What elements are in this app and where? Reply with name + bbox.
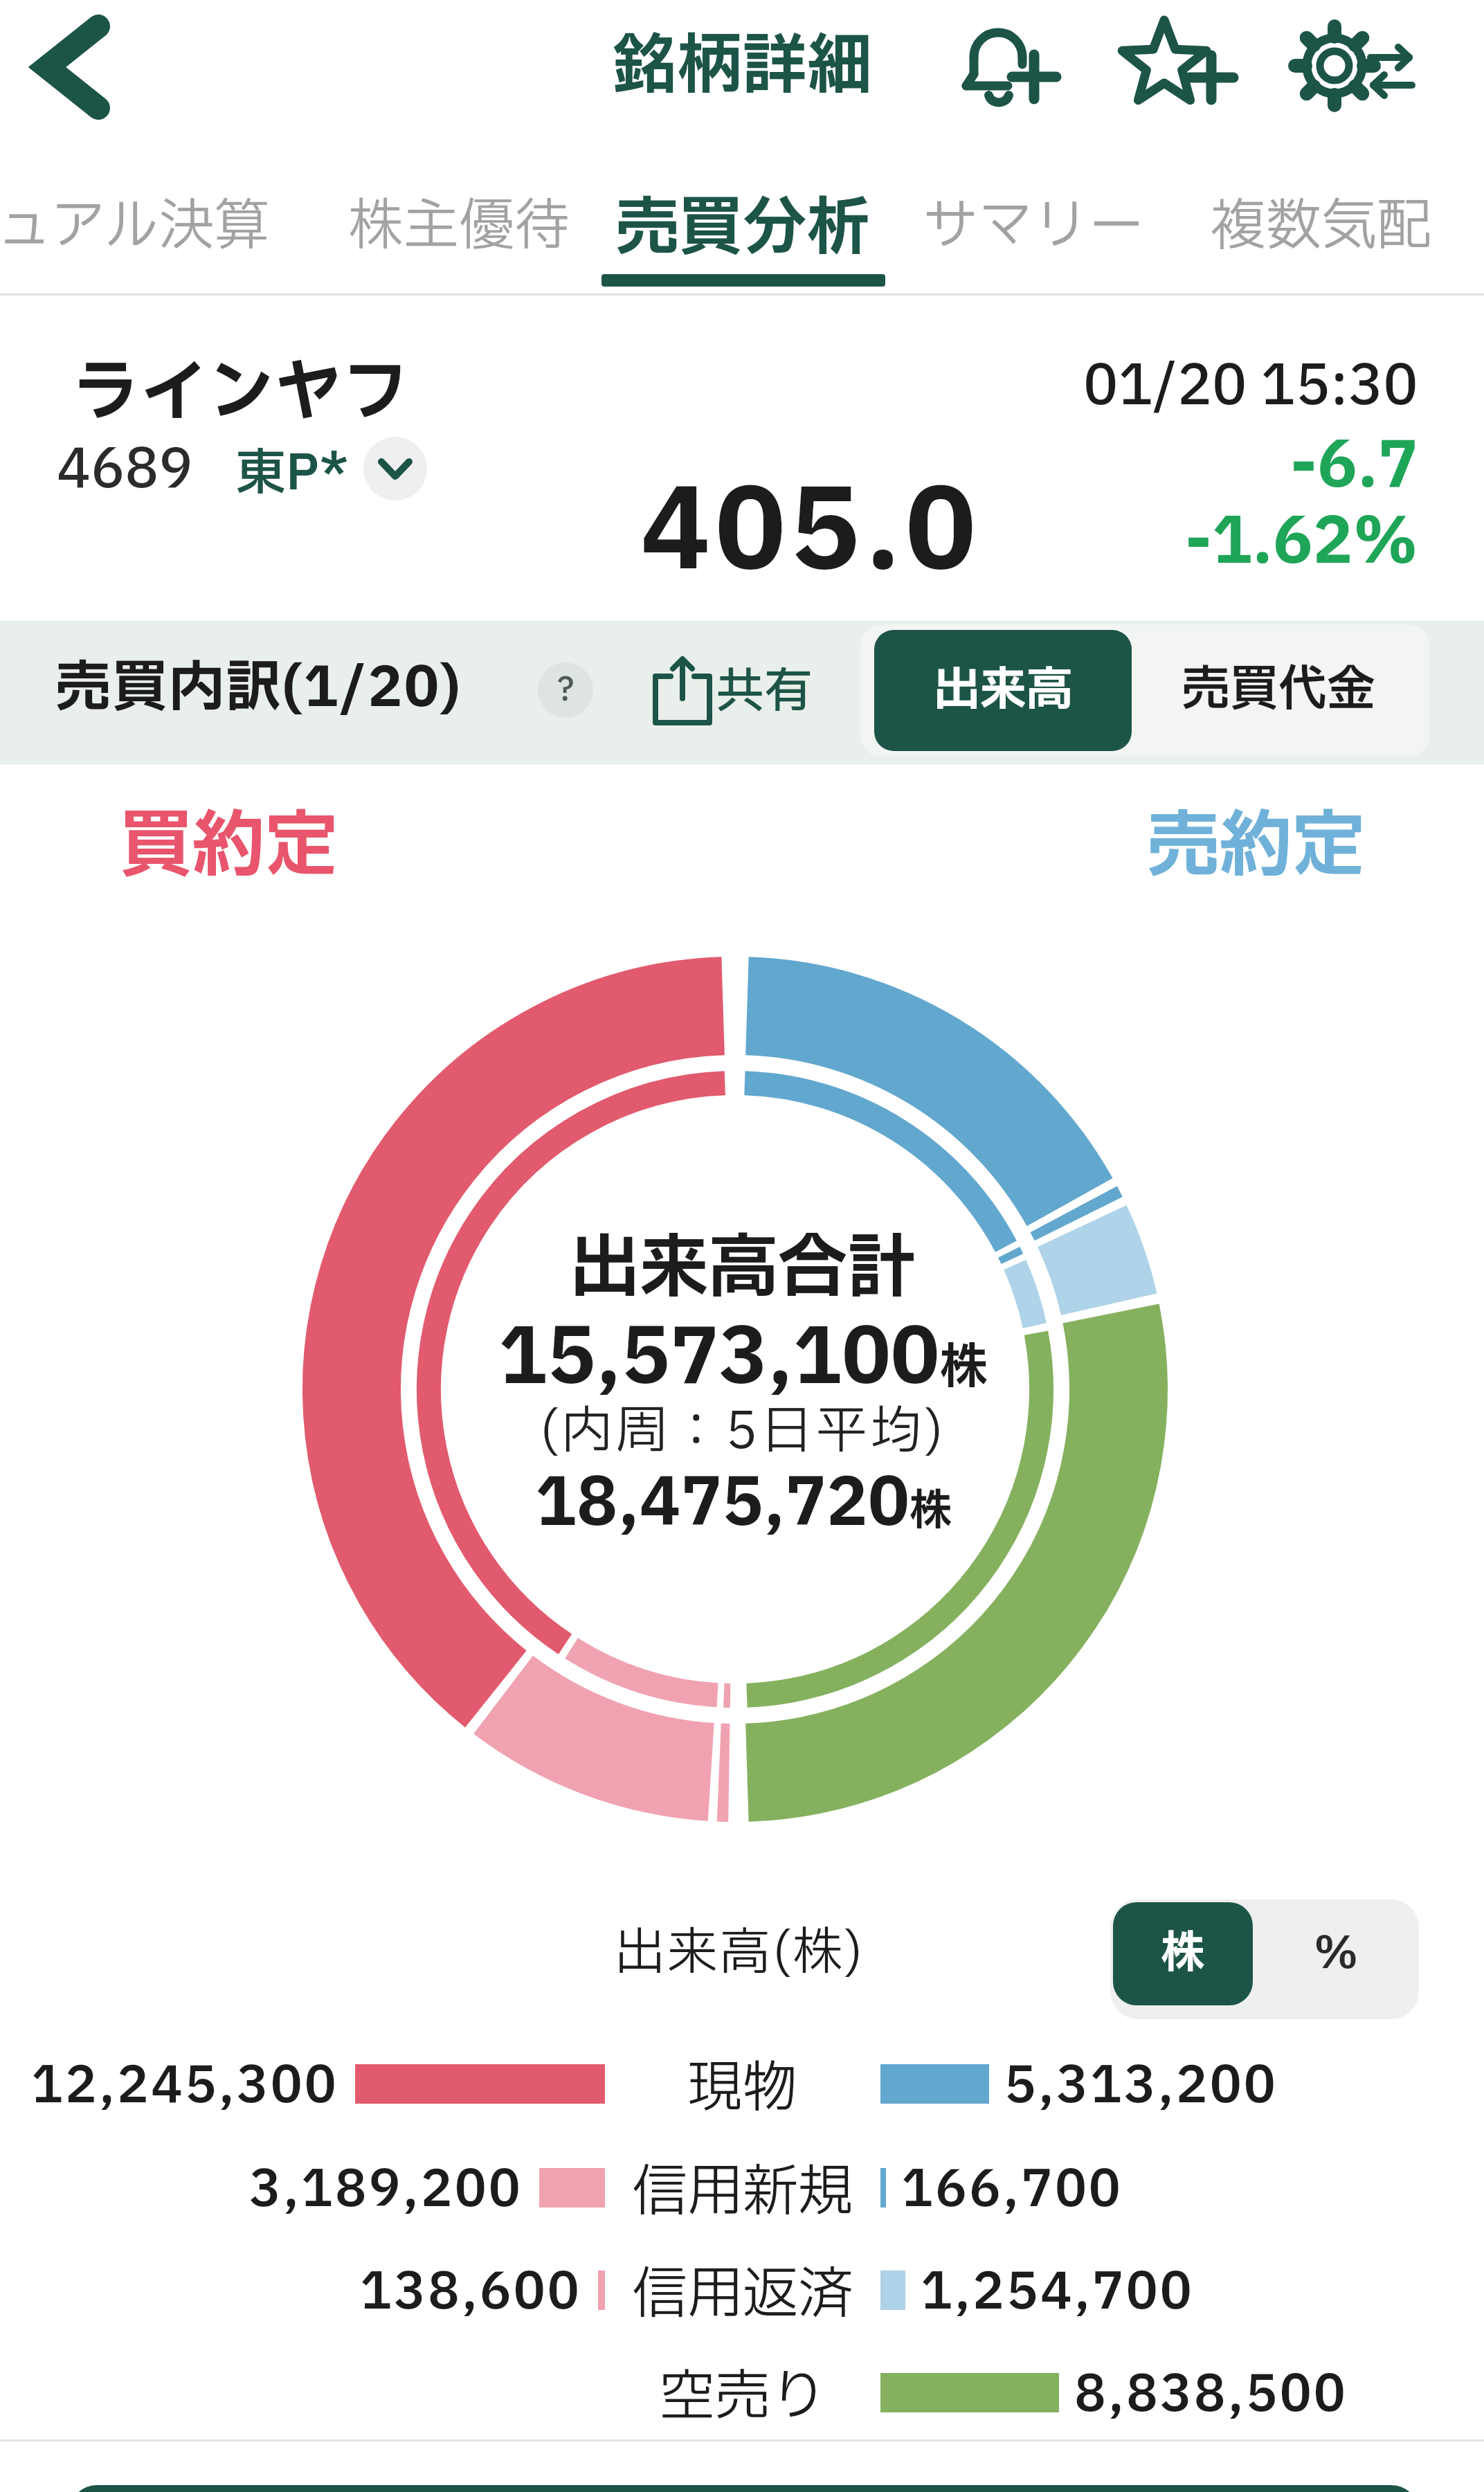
staticText: 株主優待 [348,186,570,269]
button[interactable] [647,654,820,730]
staticText: 166,700 [901,2153,1123,2228]
staticText: 18,475,720株 [535,1455,952,1553]
staticText: 8,838,500 [1074,2358,1348,2433]
button[interactable]: ? [538,662,593,718]
button[interactable]: 株主優待 [320,186,597,269]
staticText: 1,254,700 [921,2255,1194,2331]
staticText: 15,573,100株 [498,1301,988,1417]
staticText: -1.62% [1185,495,1418,590]
staticText: (内周：5日平均) [540,1394,947,1471]
staticText: 株 [1161,1921,1205,1987]
staticText: 買約定 [120,793,338,902]
staticText: 売買分析 [615,181,871,277]
button[interactable]: 売買代金 [1132,630,1425,751]
staticText: % [1314,1921,1359,1987]
staticText: ラインヤフ [72,343,411,445]
button[interactable]: % [1253,1902,1419,2005]
staticText: ジュアル決算 [0,186,270,269]
button[interactable] [69,2485,1419,2492]
button[interactable]: サマリー [895,186,1172,269]
button[interactable] [363,437,427,500]
staticText: 東P* [236,437,349,512]
button[interactable] [28,10,118,128]
staticText: 3,189,200 [249,2153,523,2228]
staticText: 12,245,300 [31,2049,338,2124]
staticText: 信用新規 [632,2151,853,2234]
staticText: 138,600 [360,2255,581,2331]
staticText: 405.0 [640,449,981,617]
staticText: 出来高 [934,656,1073,725]
staticText: 5,313,200 [1004,2049,1278,2124]
staticText: 売買内訳(1/20) [55,647,462,730]
staticText: ? [557,665,574,715]
staticText: 出来高合計 [570,1218,916,1321]
staticText: 4689 [57,430,193,511]
staticText: サマリー [923,186,1144,269]
button[interactable]: 出来高 [874,630,1132,751]
button[interactable] [1281,17,1433,121]
staticText: 空売り [660,2356,826,2439]
staticText: 出来高(株) [615,1916,865,1992]
staticText: 売約定 [1147,793,1366,902]
button[interactable]: 複数気配 [1183,186,1460,269]
button[interactable] [1118,17,1236,121]
staticText: 共有 [716,656,813,729]
button[interactable]: ジュアル決算 [0,186,270,269]
staticText: 銘柄詳細 [612,18,873,116]
staticText: 複数気配 [1211,186,1432,269]
staticText: 売買代金 [1182,654,1375,727]
button[interactable]: 株 [1113,1902,1253,2005]
staticText: 信用返済 [632,2254,853,2337]
staticText: 01/20 15:30 [1083,345,1418,428]
button[interactable] [962,17,1066,121]
staticText: -6.7 [1290,419,1418,514]
staticText: 現物 [687,2048,798,2131]
button[interactable]: 売買分析 [604,181,881,277]
